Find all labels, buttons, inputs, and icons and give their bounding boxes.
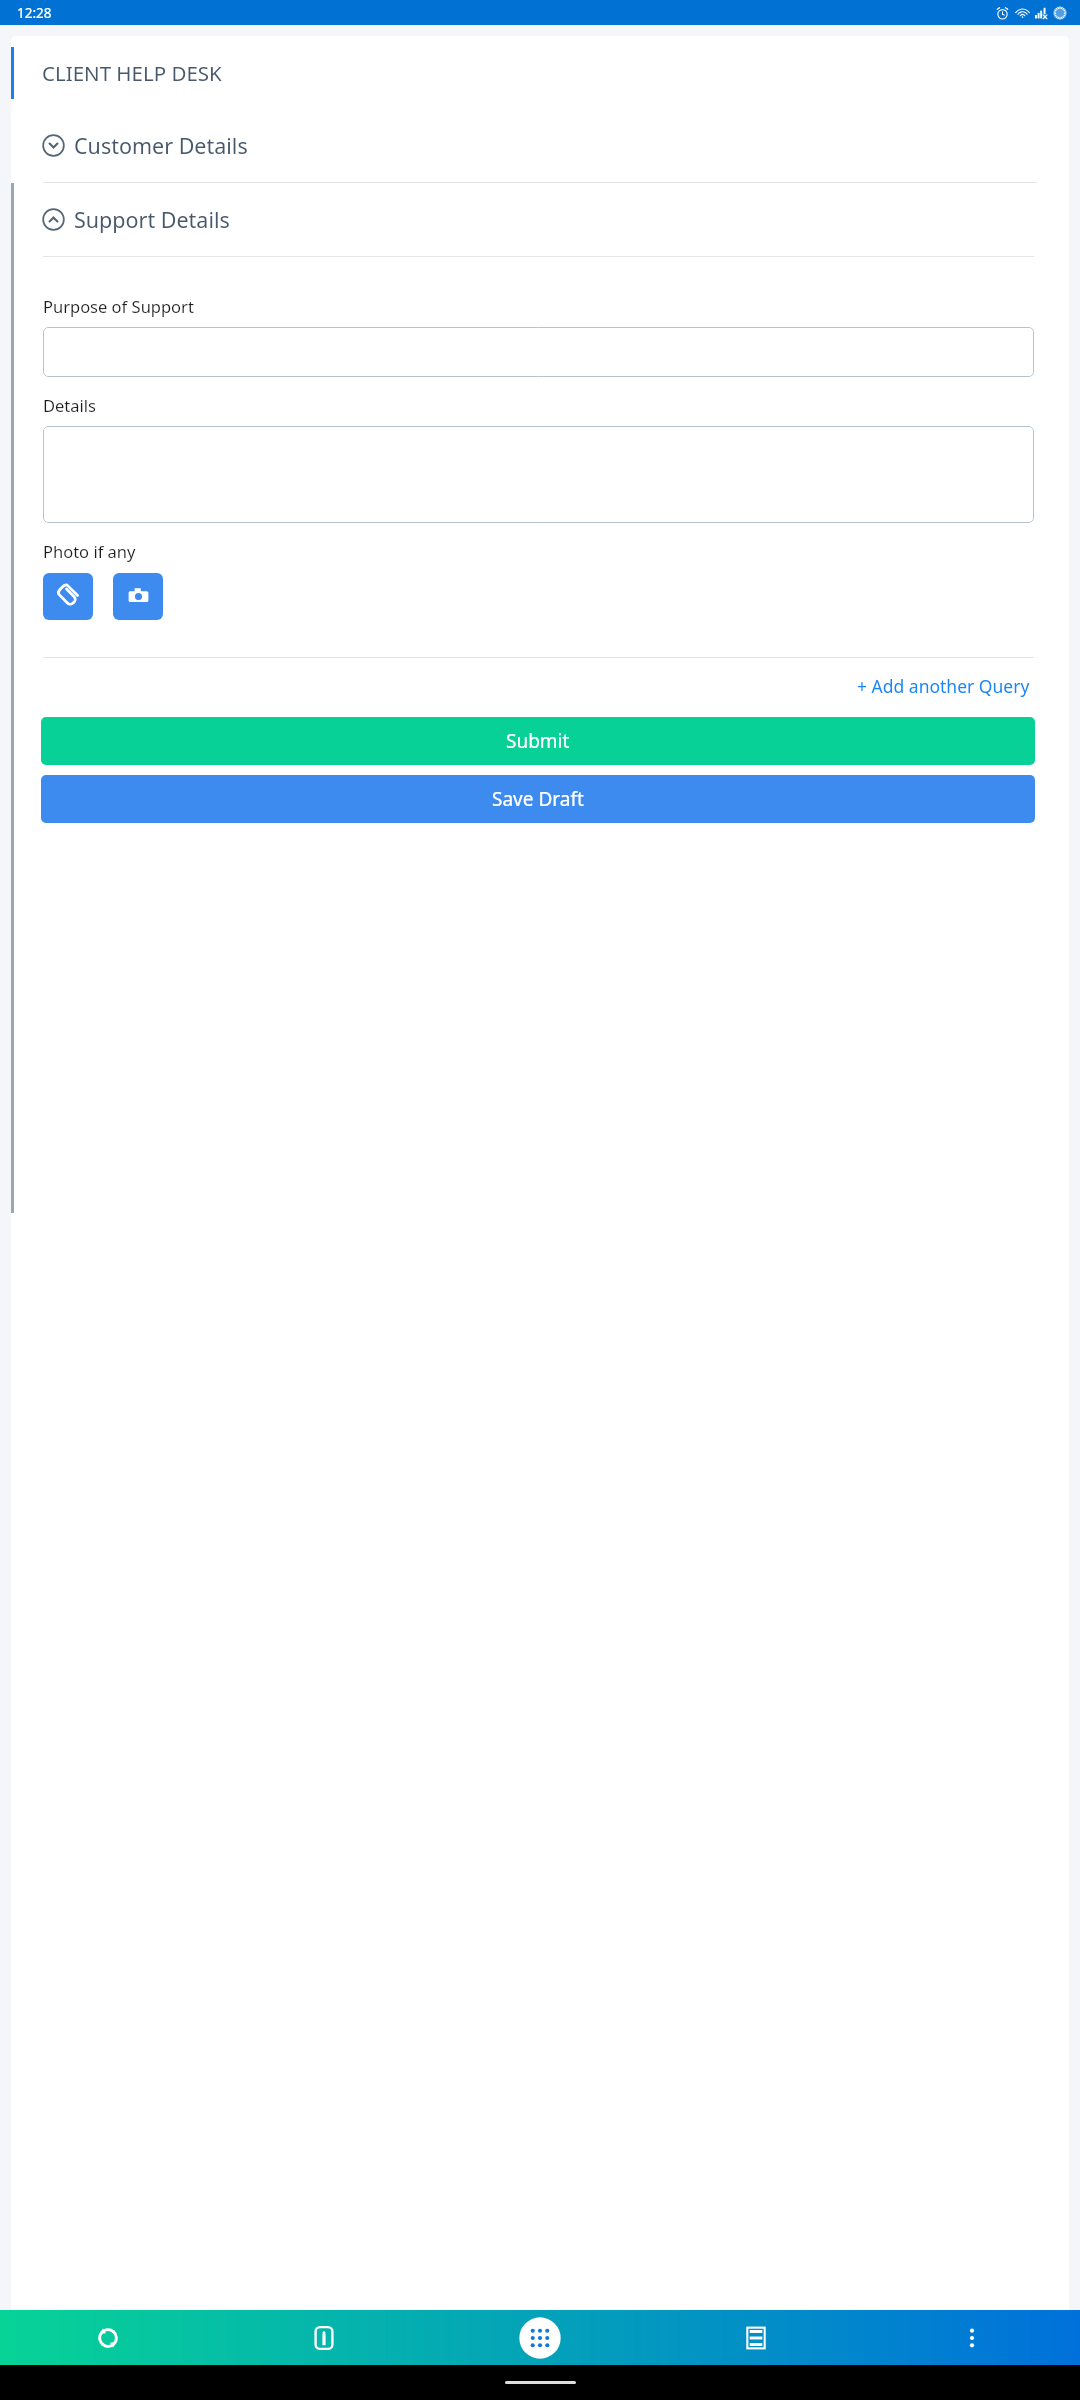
button[interactable]: Support Details xyxy=(42,203,230,236)
button[interactable]: Attach file xyxy=(43,573,93,620)
staticText: 12:28 xyxy=(17,4,52,22)
button[interactable]: Take photo xyxy=(113,573,163,620)
button[interactable]: Customer Details xyxy=(11,109,1069,182)
staticText: CLIENT HELP DESK xyxy=(42,59,222,87)
button[interactable]: More options xyxy=(864,2310,1080,2365)
button[interactable] xyxy=(43,327,1034,377)
button[interactable]: Information xyxy=(216,2310,432,2365)
button[interactable]: Submit xyxy=(41,717,1035,765)
button[interactable]: Apps xyxy=(432,2310,648,2365)
staticText: Save Draft xyxy=(492,786,584,812)
staticText: Purpose of Support xyxy=(43,295,194,317)
staticText: Photo if any xyxy=(43,540,136,562)
staticText: Details xyxy=(43,394,96,416)
staticText: + Add another Query xyxy=(857,674,1030,698)
staticText: Customer Details xyxy=(74,131,248,160)
button[interactable] xyxy=(43,426,1034,523)
button[interactable]: + Add another Query xyxy=(853,658,1034,714)
button[interactable]: Save Draft xyxy=(41,775,1035,823)
button[interactable]: Sync xyxy=(0,2310,216,2365)
staticText: Support Details xyxy=(74,205,230,234)
staticText: Submit xyxy=(506,728,570,754)
button[interactable]: List xyxy=(648,2310,864,2365)
